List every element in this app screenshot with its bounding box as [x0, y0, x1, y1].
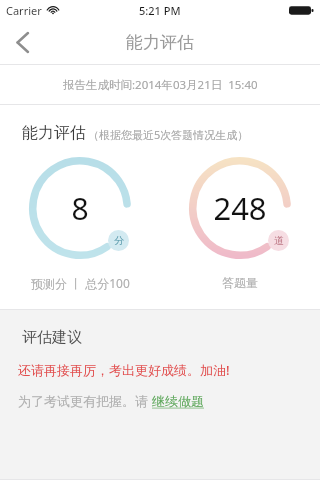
- staticText: 继续做题: [152, 393, 204, 409]
- staticText: 报告生成时间:2014年03月21日 15:40: [63, 77, 258, 93]
- staticText: 还请再接再厉，考出更好成绩。加油!: [18, 361, 230, 379]
- staticText: 5:21 PM: [139, 3, 181, 18]
- staticText: 道: [274, 234, 284, 247]
- staticText: 能力评估: [126, 32, 194, 53]
- staticText: 为了考试更有把握。请: [18, 392, 152, 410]
- staticText: 能力评估: [22, 123, 86, 143]
- button[interactable]: Back: [0, 20, 44, 64]
- staticText: 248: [213, 187, 267, 229]
- staticText: 预测分 丨 总分100: [31, 275, 130, 291]
- staticText: （根据您最近5次答题情况生成）: [88, 127, 249, 142]
- staticText: 8: [71, 188, 89, 229]
- staticText: 评估建议: [22, 328, 82, 347]
- staticText: 答题量: [222, 275, 258, 290]
- button[interactable]: 继续做题: [152, 393, 204, 409]
- staticText: Carrier: [6, 3, 42, 18]
- staticText: 分: [114, 234, 124, 247]
